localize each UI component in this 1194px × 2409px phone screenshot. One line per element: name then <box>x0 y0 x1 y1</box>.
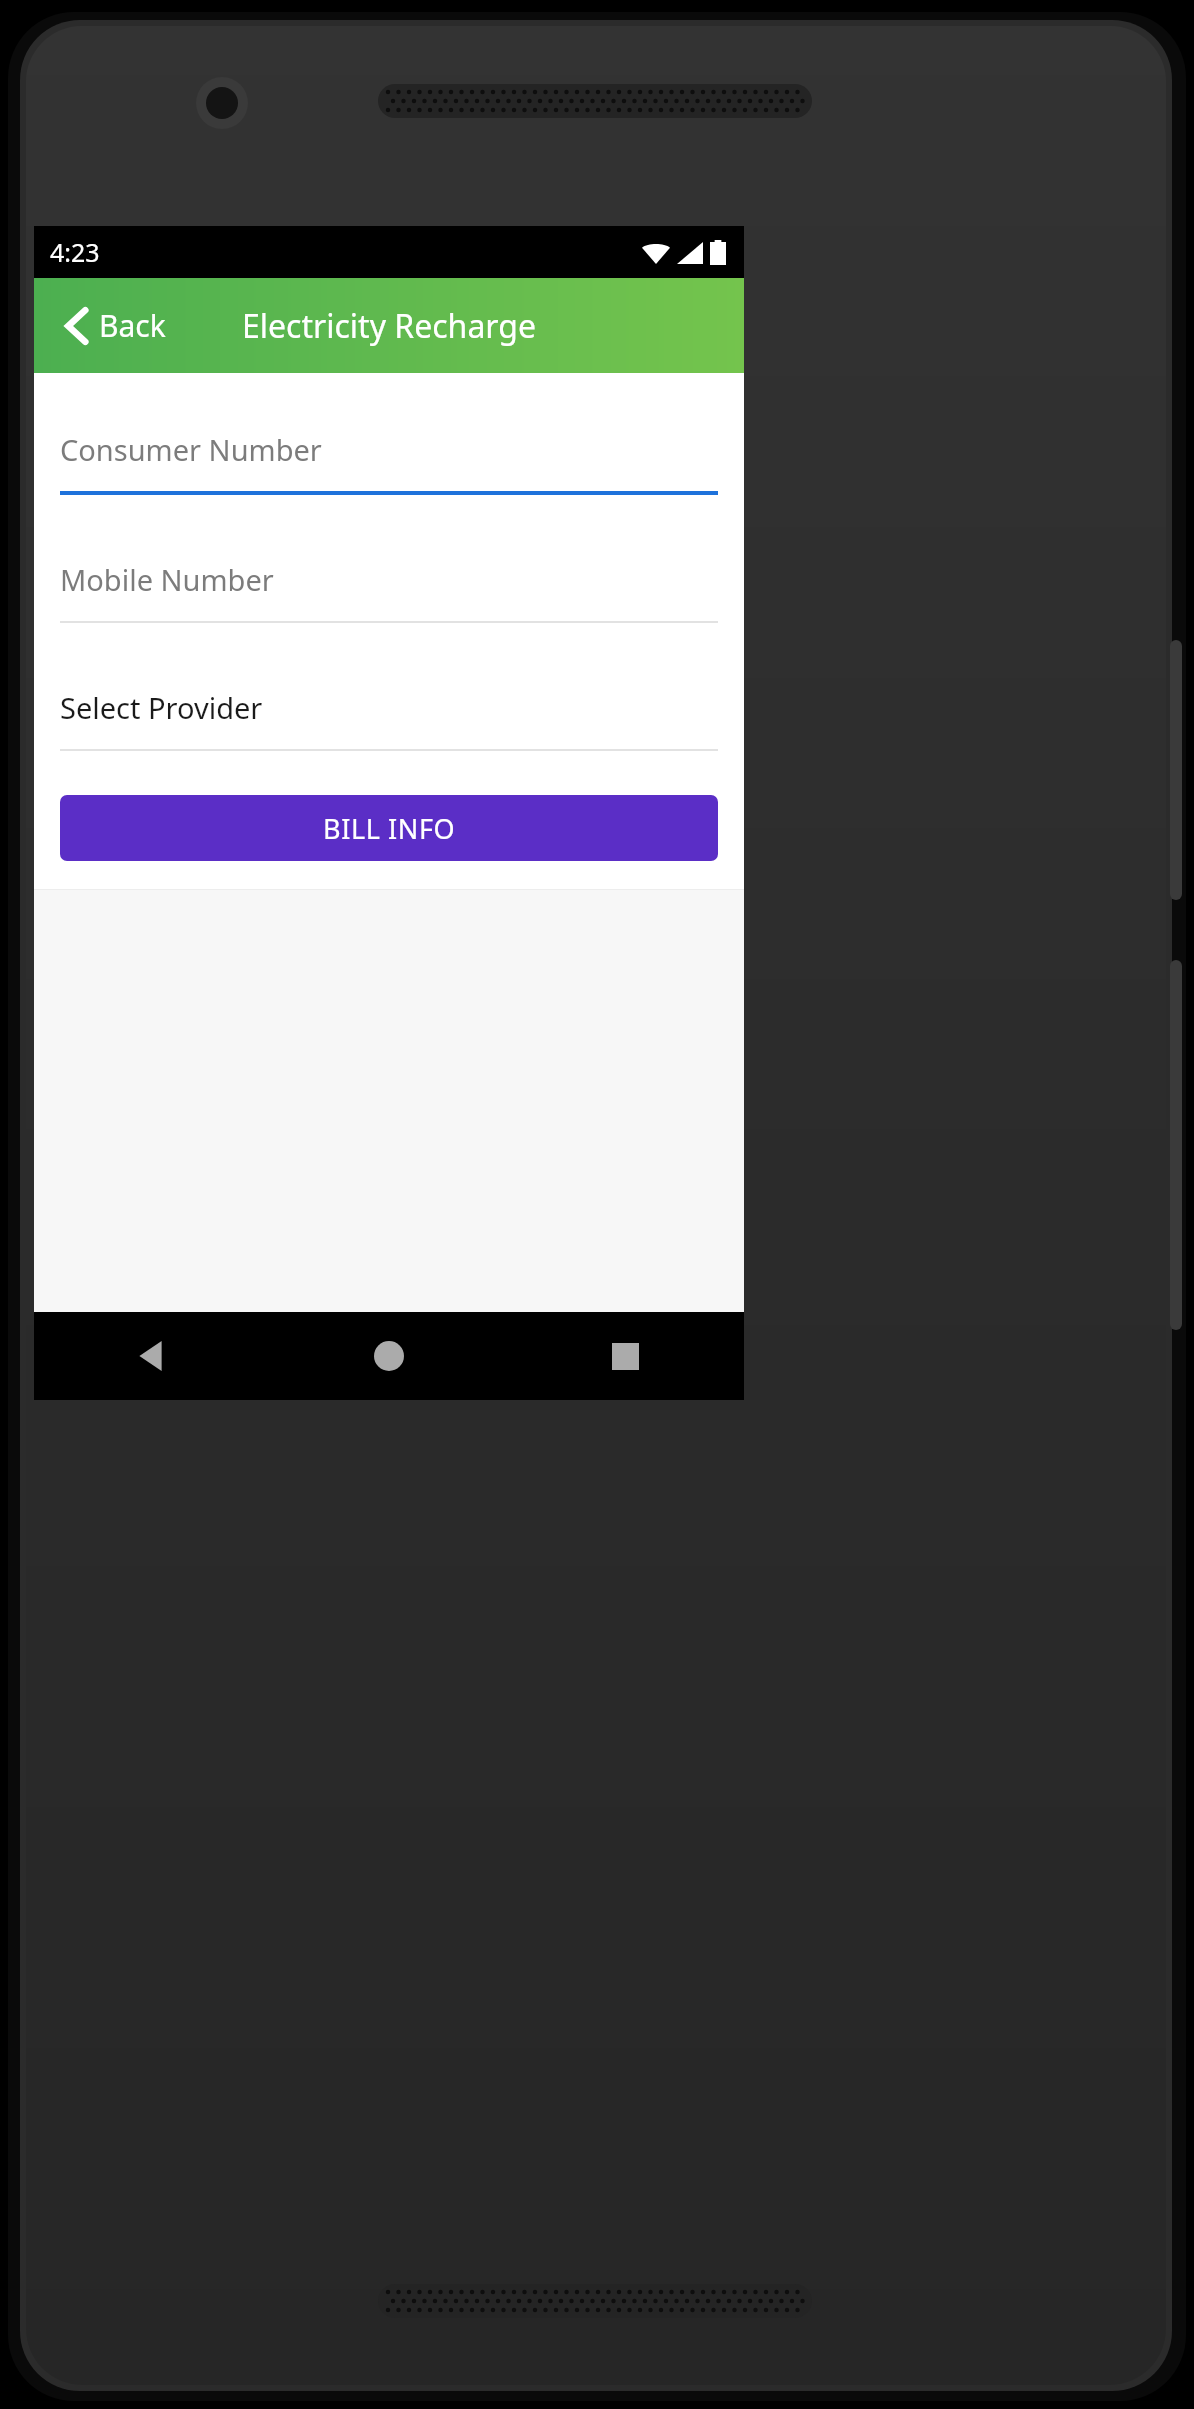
staticText: Back <box>99 305 166 346</box>
button[interactable]: Back <box>34 278 186 373</box>
button[interactable]: Home <box>270 1312 507 1400</box>
staticText: Electricity Recharge <box>242 304 536 348</box>
staticText: Mobile Number <box>60 560 274 599</box>
staticText: BILL INFO <box>323 810 456 847</box>
staticText: Select Provider <box>60 688 263 727</box>
button[interactable]: Recent apps <box>507 1312 744 1400</box>
button[interactable]: Select Provider <box>60 679 718 751</box>
button[interactable]: Back <box>34 1312 270 1400</box>
staticText: 4:23 <box>50 235 100 269</box>
button[interactable]: BILL INFO <box>60 795 718 861</box>
staticText: Consumer Number <box>60 430 322 469</box>
